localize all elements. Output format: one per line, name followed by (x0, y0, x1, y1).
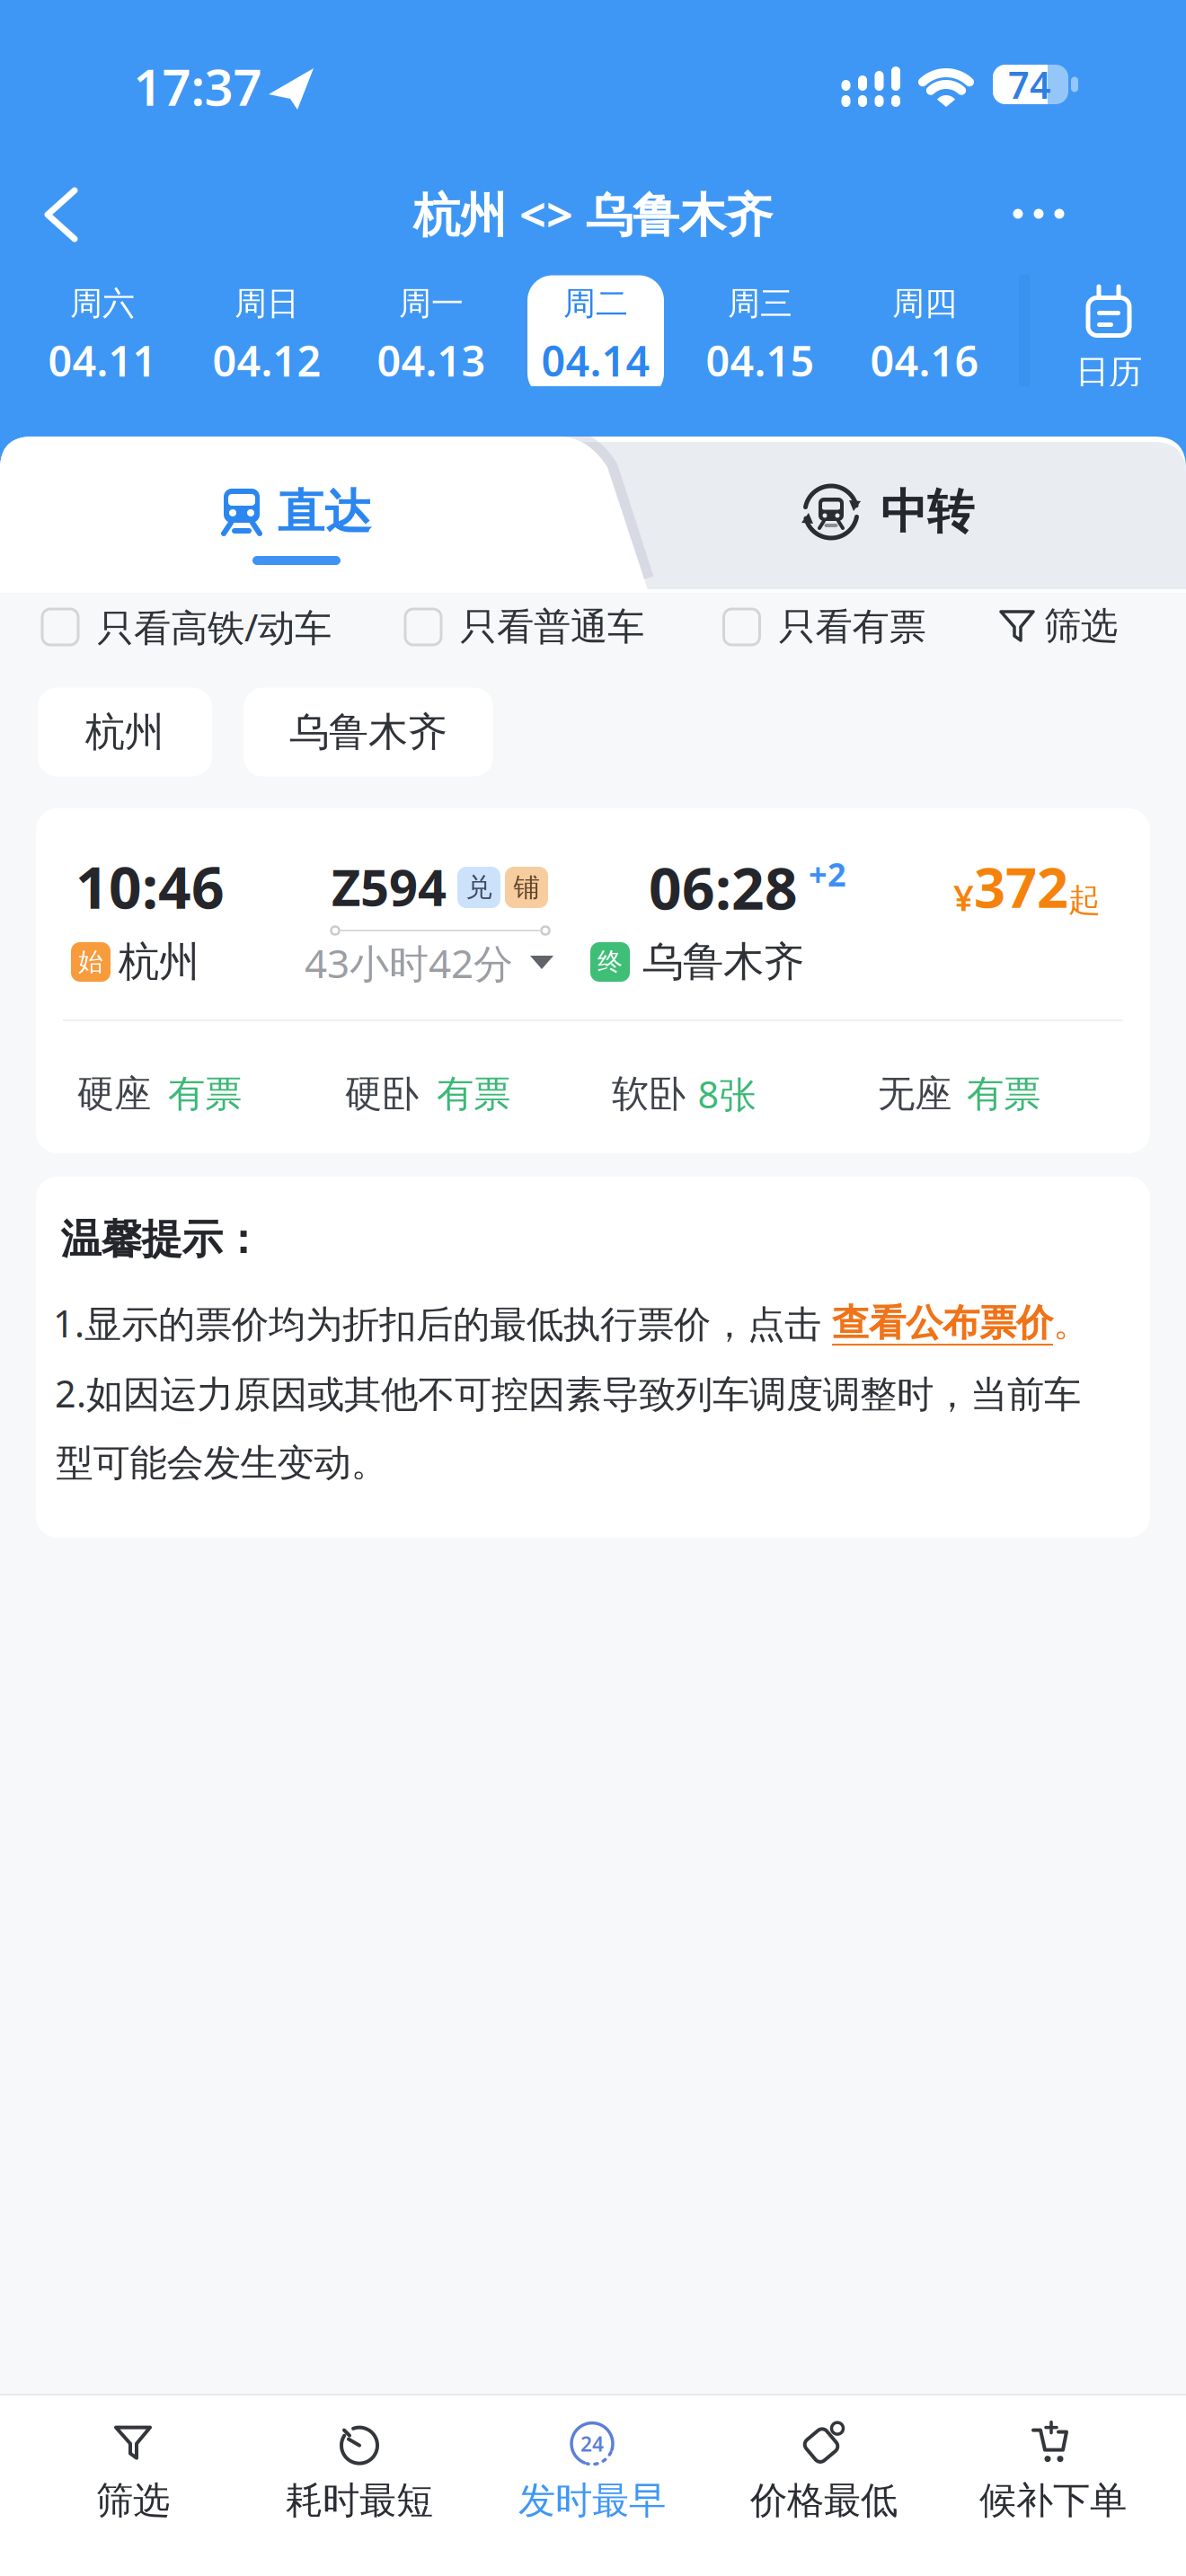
staticText: 周二 (563, 284, 628, 323)
button[interactable]: 直达 (222, 483, 371, 541)
staticText: 乌鲁木齐 (289, 708, 447, 756)
staticText: 软卧 (612, 1071, 686, 1117)
button[interactable]: 乌鲁木齐 (243, 688, 493, 776)
button[interactable]: 周三 (706, 284, 814, 388)
staticText: 中转 (881, 483, 974, 541)
staticText: 8张 (698, 1069, 756, 1119)
staticText: 始 (78, 947, 103, 977)
button[interactable]: More (1013, 209, 1064, 219)
staticText: 铺 (513, 871, 540, 904)
button[interactable]: 10:46 (36, 808, 1150, 1153)
staticText: 筛选 (96, 2478, 170, 2523)
staticText: 周日 (235, 284, 299, 323)
staticText: 有票 (967, 1071, 1040, 1117)
button[interactable]: 周四 (870, 284, 979, 388)
button[interactable]: 24 (518, 2420, 666, 2523)
staticText: 杭州 <> 乌鲁木齐 (413, 183, 773, 245)
staticText: 10:46 (75, 848, 225, 925)
staticText: 兑 (466, 871, 492, 904)
staticText: 周四 (892, 284, 957, 323)
staticText: 04.11 (48, 332, 157, 388)
staticText: 04.15 (706, 332, 814, 388)
staticText: 终 (597, 947, 623, 977)
staticText: ¥372起 (953, 850, 1101, 923)
staticText: 型可能会发生变动。 (56, 1440, 388, 1486)
staticText: 2.如因运力原因或其他不可控因素导致列车调度调整时，当前车 (55, 1368, 1081, 1418)
staticText: 43小时42分 (305, 937, 513, 989)
button[interactable]: 耗时最短 (286, 2420, 433, 2523)
staticText: 杭州 (85, 708, 164, 756)
button[interactable]: 日历 (1073, 273, 1145, 395)
staticText: 24 (580, 2430, 604, 2457)
staticText: 。 (1053, 1300, 1090, 1346)
button[interactable]: 只看普通车 (405, 604, 644, 650)
button[interactable]: 候补下单 (979, 2420, 1127, 2523)
button[interactable]: 周日 (212, 284, 321, 388)
staticText: 硬卧 (345, 1071, 419, 1117)
button[interactable]: 只看高铁/动车 (42, 602, 332, 652)
button[interactable]: 周六 (48, 284, 157, 388)
staticText: 周六 (70, 284, 135, 323)
staticText: 日历 (1075, 352, 1142, 393)
staticText: 04.12 (212, 332, 321, 388)
staticText: 04.16 (870, 332, 979, 388)
staticText: 04.13 (377, 332, 486, 388)
staticText: 04.14 (541, 332, 650, 388)
staticText: +2 (809, 852, 846, 895)
staticText: 周三 (728, 284, 792, 323)
staticText: 有票 (168, 1071, 242, 1117)
button[interactable]: 筛选 (999, 603, 1118, 649)
staticText: 1.显示的票价均为折扣后的最低执行票价，点击 (53, 1298, 832, 1348)
button[interactable]: 周二 (541, 284, 650, 388)
staticText: 17:37 (133, 53, 262, 120)
staticText: 无座 (878, 1071, 951, 1117)
staticText: Z594 (332, 853, 447, 920)
staticText: 乌鲁木齐 (642, 937, 804, 987)
staticText: 价格最低 (750, 2478, 898, 2523)
staticText: 候补下单 (979, 2478, 1127, 2523)
staticText: 只看普通车 (460, 604, 644, 650)
staticText: 筛选 (1044, 603, 1118, 649)
staticText: 查看公布票价 (832, 1300, 1053, 1346)
button[interactable]: 中转 (801, 482, 974, 542)
staticText: 温馨提示： (61, 1215, 263, 1265)
button[interactable]: 只看有票 (724, 604, 926, 650)
button[interactable]: 查看公布票价 (832, 1300, 1053, 1346)
staticText: 74 (1008, 60, 1051, 109)
staticText: 硬座 (77, 1071, 151, 1117)
button[interactable]: 杭州 (38, 688, 212, 776)
button[interactable]: 筛选 (96, 2420, 170, 2523)
staticText: 只看高铁/动车 (97, 602, 332, 652)
button[interactable]: 周一 (377, 284, 486, 388)
staticText: 发时最早 (518, 2478, 666, 2523)
staticText: 直达 (278, 483, 371, 541)
staticText: 06:28 (649, 849, 798, 926)
button[interactable]: 价格最低 (750, 2420, 898, 2523)
staticText: 周一 (399, 284, 464, 323)
button[interactable]: Back (42, 185, 96, 244)
staticText: 耗时最短 (286, 2478, 433, 2523)
staticText: 只看有票 (779, 604, 926, 650)
staticText: 有票 (437, 1071, 510, 1117)
staticText: 杭州 (119, 937, 199, 987)
